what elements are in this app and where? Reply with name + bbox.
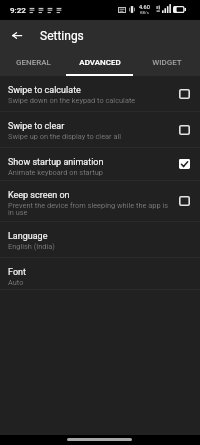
button[interactable]: Unchecked <box>179 89 190 99</box>
staticText: Keep screen on <box>8 190 70 201</box>
staticText: Show startup animation <box>8 157 104 168</box>
staticText: KB/s <box>140 10 149 15</box>
staticText: 4.60 <box>139 4 150 10</box>
button[interactable]: Swipe to calculate <box>0 76 200 111</box>
staticText: Auto <box>8 278 24 287</box>
button[interactable]: Swipe to clear <box>0 112 200 147</box>
staticText: Font <box>8 267 26 278</box>
button[interactable]: Keep screen on <box>0 181 200 221</box>
staticText: ADVANCED <box>79 58 121 67</box>
button[interactable]: Unchecked <box>179 196 190 206</box>
staticText: WIDGET <box>152 58 182 67</box>
button[interactable]: WIDGET <box>133 52 200 76</box>
staticText: GENERAL <box>16 58 51 67</box>
staticText: 9:22 <box>10 6 26 15</box>
button[interactable]: Font <box>0 258 200 289</box>
staticText: English (India) <box>8 242 55 251</box>
staticText: Swipe down on the keypad to calculate <box>8 96 136 105</box>
button[interactable]: Language <box>0 222 200 257</box>
staticText: Language <box>8 231 48 242</box>
staticText: Prevent the device from sleeping while t… <box>8 201 170 217</box>
button[interactable]: Show startup animation <box>0 148 200 180</box>
button[interactable]: Checked <box>179 159 190 169</box>
staticText: Swipe up on the display to clear all <box>8 132 122 141</box>
staticText: Animate keyboard on startup <box>8 168 103 177</box>
button[interactable]: ADVANCED <box>66 52 133 76</box>
staticText: Swipe to calculate <box>8 85 81 96</box>
button[interactable]: GENERAL <box>0 52 66 76</box>
staticText: Swipe to clear <box>8 121 65 132</box>
button[interactable]: Navigate up <box>4 23 29 48</box>
staticText: Settings <box>40 29 84 43</box>
button[interactable]: Unchecked <box>179 125 190 135</box>
